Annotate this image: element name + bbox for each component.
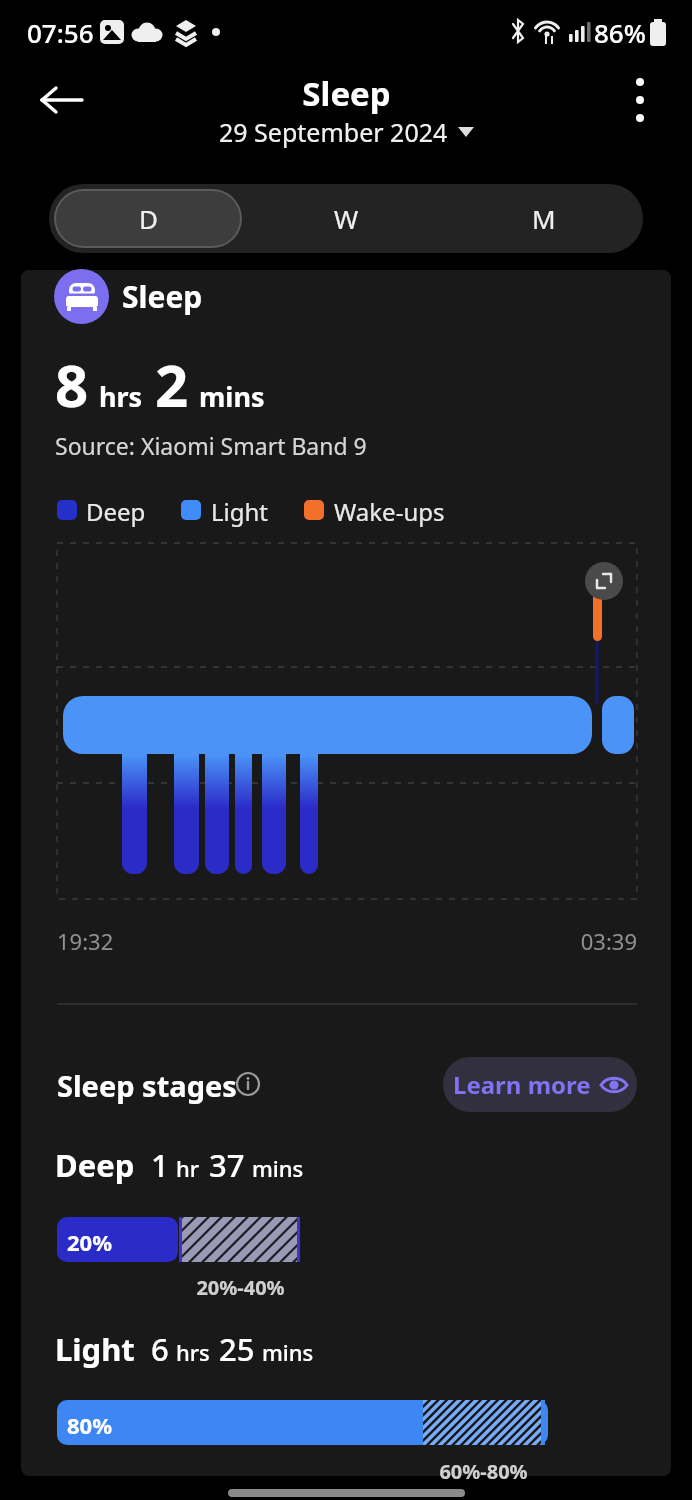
button[interactable] [32,70,92,130]
staticText: Learn more [453,1068,591,1101]
staticText: 60%-80% [439,1458,528,1485]
button[interactable]: D [54,189,242,248]
staticText: 86% [594,15,646,50]
staticText: Light [55,1328,135,1370]
staticText: 07:56 [27,15,94,50]
button[interactable]: W [247,184,445,253]
staticText: W [334,201,359,236]
staticText: 1 [151,1144,169,1186]
staticText: M [532,201,556,236]
staticText: 80% [67,1410,113,1440]
button[interactable] [612,72,668,128]
staticText: hrs [176,1337,210,1367]
staticText: 2 [155,345,189,424]
staticText: 29 September 2024 [219,115,448,149]
staticText: Sleep stages [57,1066,237,1105]
staticText: mins [262,1337,314,1367]
button[interactable]: 29 September 2024 [196,114,496,150]
staticText: D [139,201,158,236]
staticText: 6 [151,1328,169,1370]
staticText: 19:32 [57,926,114,956]
staticText: 20%-40% [196,1274,285,1301]
staticText: 20% [67,1227,113,1257]
staticText: Sleep [122,276,203,317]
button[interactable] [585,562,625,602]
staticText: Deep [55,1144,135,1186]
staticText: 25 [219,1328,255,1370]
staticText: mins [199,378,265,415]
staticText: 03:39 [580,926,637,956]
staticText: 37 [209,1144,245,1186]
button[interactable]: Learn more [443,1057,637,1112]
staticText: Source: Xiaomi Smart Band 9 [55,430,367,461]
staticText: Deep [86,495,146,528]
staticText: mins [252,1153,304,1183]
staticText: 8 [55,345,89,424]
staticText: hrs [99,378,143,415]
staticText: hr [176,1153,200,1183]
staticText: Wake-ups [334,495,445,528]
staticText: Light [211,495,269,528]
button[interactable]: M [445,184,643,253]
staticText: Sleep [302,71,391,116]
